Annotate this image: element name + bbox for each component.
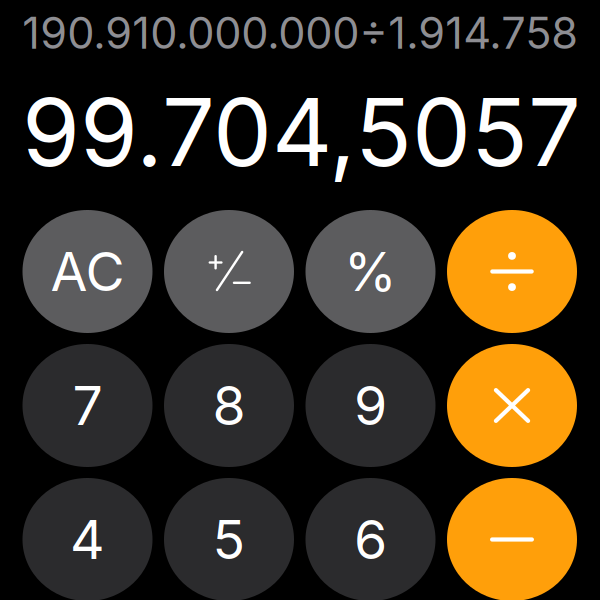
button[interactable]: Multiply	[447, 344, 577, 467]
staticText: 4	[70, 507, 105, 572]
staticText: 6	[354, 507, 387, 572]
button[interactable]: Plus minus	[164, 210, 294, 333]
staticText: %	[344, 239, 397, 304]
staticText: AC	[50, 239, 124, 304]
button[interactable]: 4	[22, 478, 152, 600]
button[interactable]: %	[305, 210, 435, 333]
staticText: 8	[212, 373, 245, 438]
staticText: 9	[354, 373, 387, 438]
staticText: 5	[212, 507, 245, 572]
button[interactable]: AC	[22, 210, 152, 333]
staticText: 7	[72, 373, 102, 438]
button[interactable]: 7	[22, 344, 152, 467]
button[interactable]: 8	[164, 344, 294, 467]
staticText: 99.704,5057	[22, 75, 581, 189]
button[interactable]: Divide	[447, 210, 577, 333]
button[interactable]: Minus	[447, 478, 577, 600]
button[interactable]: 6	[305, 478, 435, 600]
button[interactable]: 9	[305, 344, 435, 467]
staticText: 190.910.000.000÷1.914.758	[22, 7, 578, 59]
button[interactable]: 5	[164, 478, 294, 600]
